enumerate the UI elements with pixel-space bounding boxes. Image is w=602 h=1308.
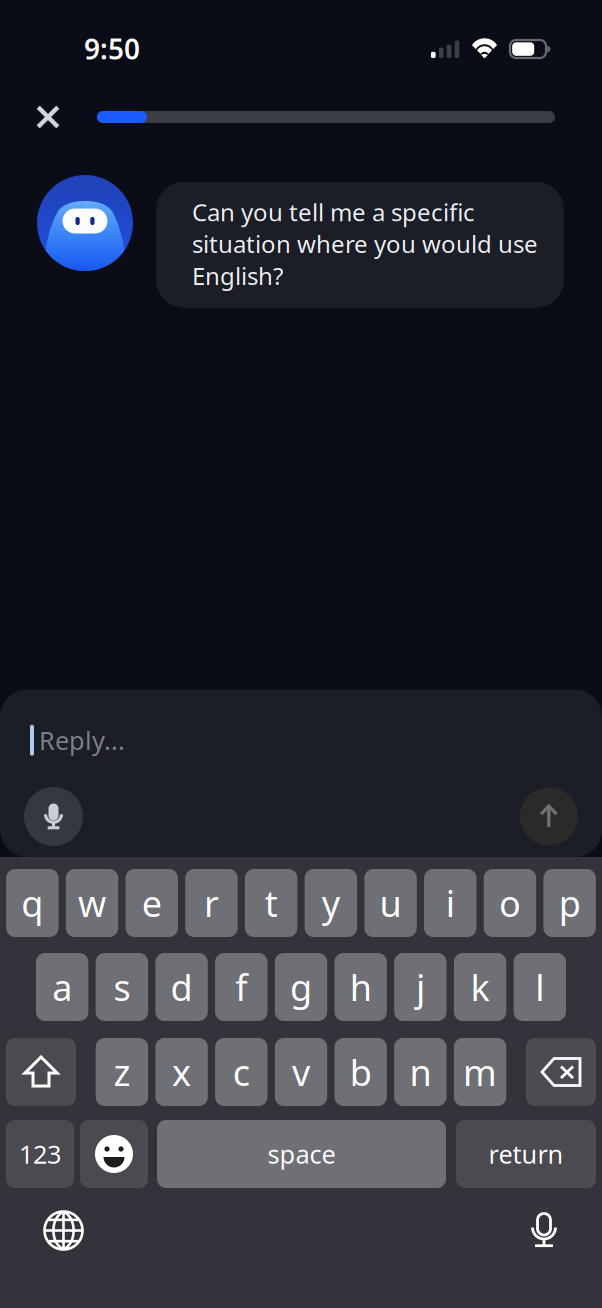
- button[interactable]: v: [275, 1038, 327, 1106]
- button[interactable]: 123: [6, 1120, 74, 1188]
- button[interactable]: Emoji: [80, 1120, 148, 1188]
- button[interactable]: p: [543, 869, 596, 937]
- button[interactable]: a: [36, 953, 88, 1021]
- staticText: x: [172, 1048, 191, 1096]
- button[interactable]: h: [334, 953, 387, 1021]
- staticText: space: [267, 1137, 335, 1171]
- staticText: o: [499, 879, 521, 927]
- staticText: m: [463, 1048, 497, 1096]
- staticText: d: [171, 963, 193, 1011]
- button[interactable]: j: [394, 953, 447, 1021]
- staticText: y: [322, 879, 340, 927]
- staticText: p: [559, 879, 581, 927]
- button[interactable]: q: [6, 869, 59, 937]
- staticText: Can you tell me a specific situation whe…: [192, 196, 538, 292]
- button[interactable]: o: [484, 869, 536, 937]
- staticText: l: [535, 963, 544, 1011]
- button[interactable]: z: [96, 1038, 148, 1106]
- staticText: n: [409, 1048, 431, 1096]
- button[interactable]: t: [245, 869, 297, 937]
- button[interactable]: Send: [520, 787, 578, 845]
- button[interactable]: k: [454, 953, 506, 1021]
- button[interactable]: Dictate: [517, 1199, 571, 1261]
- staticText: r: [204, 879, 219, 927]
- button[interactable]: f: [215, 953, 267, 1021]
- staticText: Reply...: [39, 723, 125, 757]
- button[interactable]: c: [215, 1038, 267, 1106]
- staticText: t: [265, 879, 278, 927]
- staticText: e: [142, 879, 162, 927]
- button[interactable]: Voice input: [24, 787, 83, 846]
- staticText: i: [446, 879, 455, 927]
- button[interactable]: r: [185, 869, 238, 937]
- staticText: return: [488, 1137, 563, 1171]
- staticText: s: [113, 963, 130, 1011]
- staticText: 9:50: [84, 30, 140, 67]
- button[interactable]: m: [454, 1038, 506, 1106]
- button[interactable]: n: [394, 1038, 447, 1106]
- button[interactable]: u: [364, 869, 417, 937]
- button[interactable]: x: [155, 1038, 208, 1106]
- staticText: 123: [19, 1137, 61, 1171]
- button[interactable]: space: [157, 1120, 446, 1188]
- button[interactable]: s: [96, 953, 148, 1021]
- staticText: u: [380, 879, 402, 927]
- staticText: f: [235, 963, 247, 1011]
- staticText: v: [292, 1048, 310, 1096]
- staticText: k: [471, 963, 490, 1011]
- staticText: c: [233, 1048, 250, 1096]
- button[interactable]: g: [275, 953, 327, 1021]
- button[interactable]: w: [66, 869, 118, 937]
- staticText: b: [350, 1048, 372, 1096]
- button[interactable]: Switch keyboard: [31, 1198, 96, 1263]
- button[interactable]: e: [126, 869, 178, 937]
- staticText: g: [290, 963, 312, 1011]
- staticText: j: [416, 963, 425, 1011]
- button[interactable]: Close: [0, 86, 97, 148]
- button[interactable]: return: [456, 1120, 596, 1188]
- staticText: q: [21, 879, 43, 927]
- button[interactable]: y: [305, 869, 357, 937]
- button[interactable]: Delete: [526, 1038, 596, 1106]
- button[interactable]: d: [155, 953, 208, 1021]
- staticText: z: [113, 1048, 130, 1096]
- button[interactable]: Shift: [6, 1038, 76, 1106]
- staticText: h: [350, 963, 372, 1011]
- button[interactable]: b: [334, 1038, 387, 1106]
- staticText: a: [52, 963, 72, 1011]
- staticText: w: [78, 879, 106, 927]
- button[interactable]: i: [424, 869, 476, 937]
- button[interactable]: l: [514, 953, 566, 1021]
